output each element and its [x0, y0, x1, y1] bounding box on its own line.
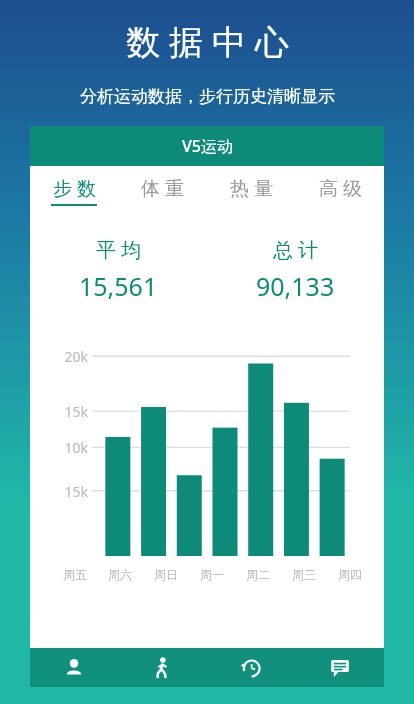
staticText: 15k [48, 482, 88, 501]
staticText: 10k [48, 438, 88, 457]
button[interactable]: Messages [295, 648, 384, 687]
staticText: 周六 [108, 567, 132, 582]
button[interactable]: 热 量 [206, 166, 295, 214]
staticText: 总 计 [273, 236, 319, 263]
staticText: 体 重 [141, 175, 184, 201]
button[interactable]: History [206, 648, 295, 687]
staticText: 平 均 [96, 236, 142, 263]
button[interactable]: 总 计 [207, 236, 384, 303]
staticText: 15,561 [79, 269, 158, 303]
staticText: 周五 [63, 567, 87, 582]
staticText: 步 数 [53, 175, 96, 201]
staticText: 周日 [154, 567, 178, 582]
button[interactable]: V5运动 [30, 126, 384, 166]
staticText: 周一 [200, 567, 224, 582]
staticText: 高 级 [319, 175, 362, 201]
staticText: V5运动 [182, 135, 233, 157]
button[interactable]: 平 均 [30, 236, 207, 303]
staticText: 周三 [292, 567, 316, 582]
staticText: 热 量 [230, 175, 273, 201]
staticText: 20k [48, 347, 88, 366]
staticText: 分析运动数据，步行历史清晰显示 [80, 86, 335, 107]
staticText: 15k [48, 402, 88, 421]
button[interactable]: Activity [118, 648, 206, 687]
button[interactable]: Profile [30, 648, 118, 687]
button[interactable]: 步 数 [30, 166, 118, 214]
staticText: 周二 [246, 567, 270, 582]
button[interactable]: 体 重 [118, 166, 206, 214]
staticText: 周四 [338, 567, 362, 582]
button[interactable]: 高 级 [295, 166, 384, 214]
staticText: 90,133 [256, 269, 335, 303]
staticText: 数 据 中 心 [126, 18, 289, 64]
